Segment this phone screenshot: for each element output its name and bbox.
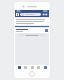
button[interactable] [19,34,45,36]
button[interactable]: Facebook home [16,13,19,16]
button[interactable]: Marketplace [36,65,41,69]
button[interactable]: Menu [43,65,48,69]
button[interactable] [15,18,49,25]
button[interactable] [15,28,49,33]
button[interactable]: Friends [23,65,28,69]
button[interactable]: Messages [42,13,48,16]
button[interactable]: Notifications [30,65,35,69]
button[interactable]: Home [17,65,22,69]
button[interactable]: Search [20,13,41,16]
